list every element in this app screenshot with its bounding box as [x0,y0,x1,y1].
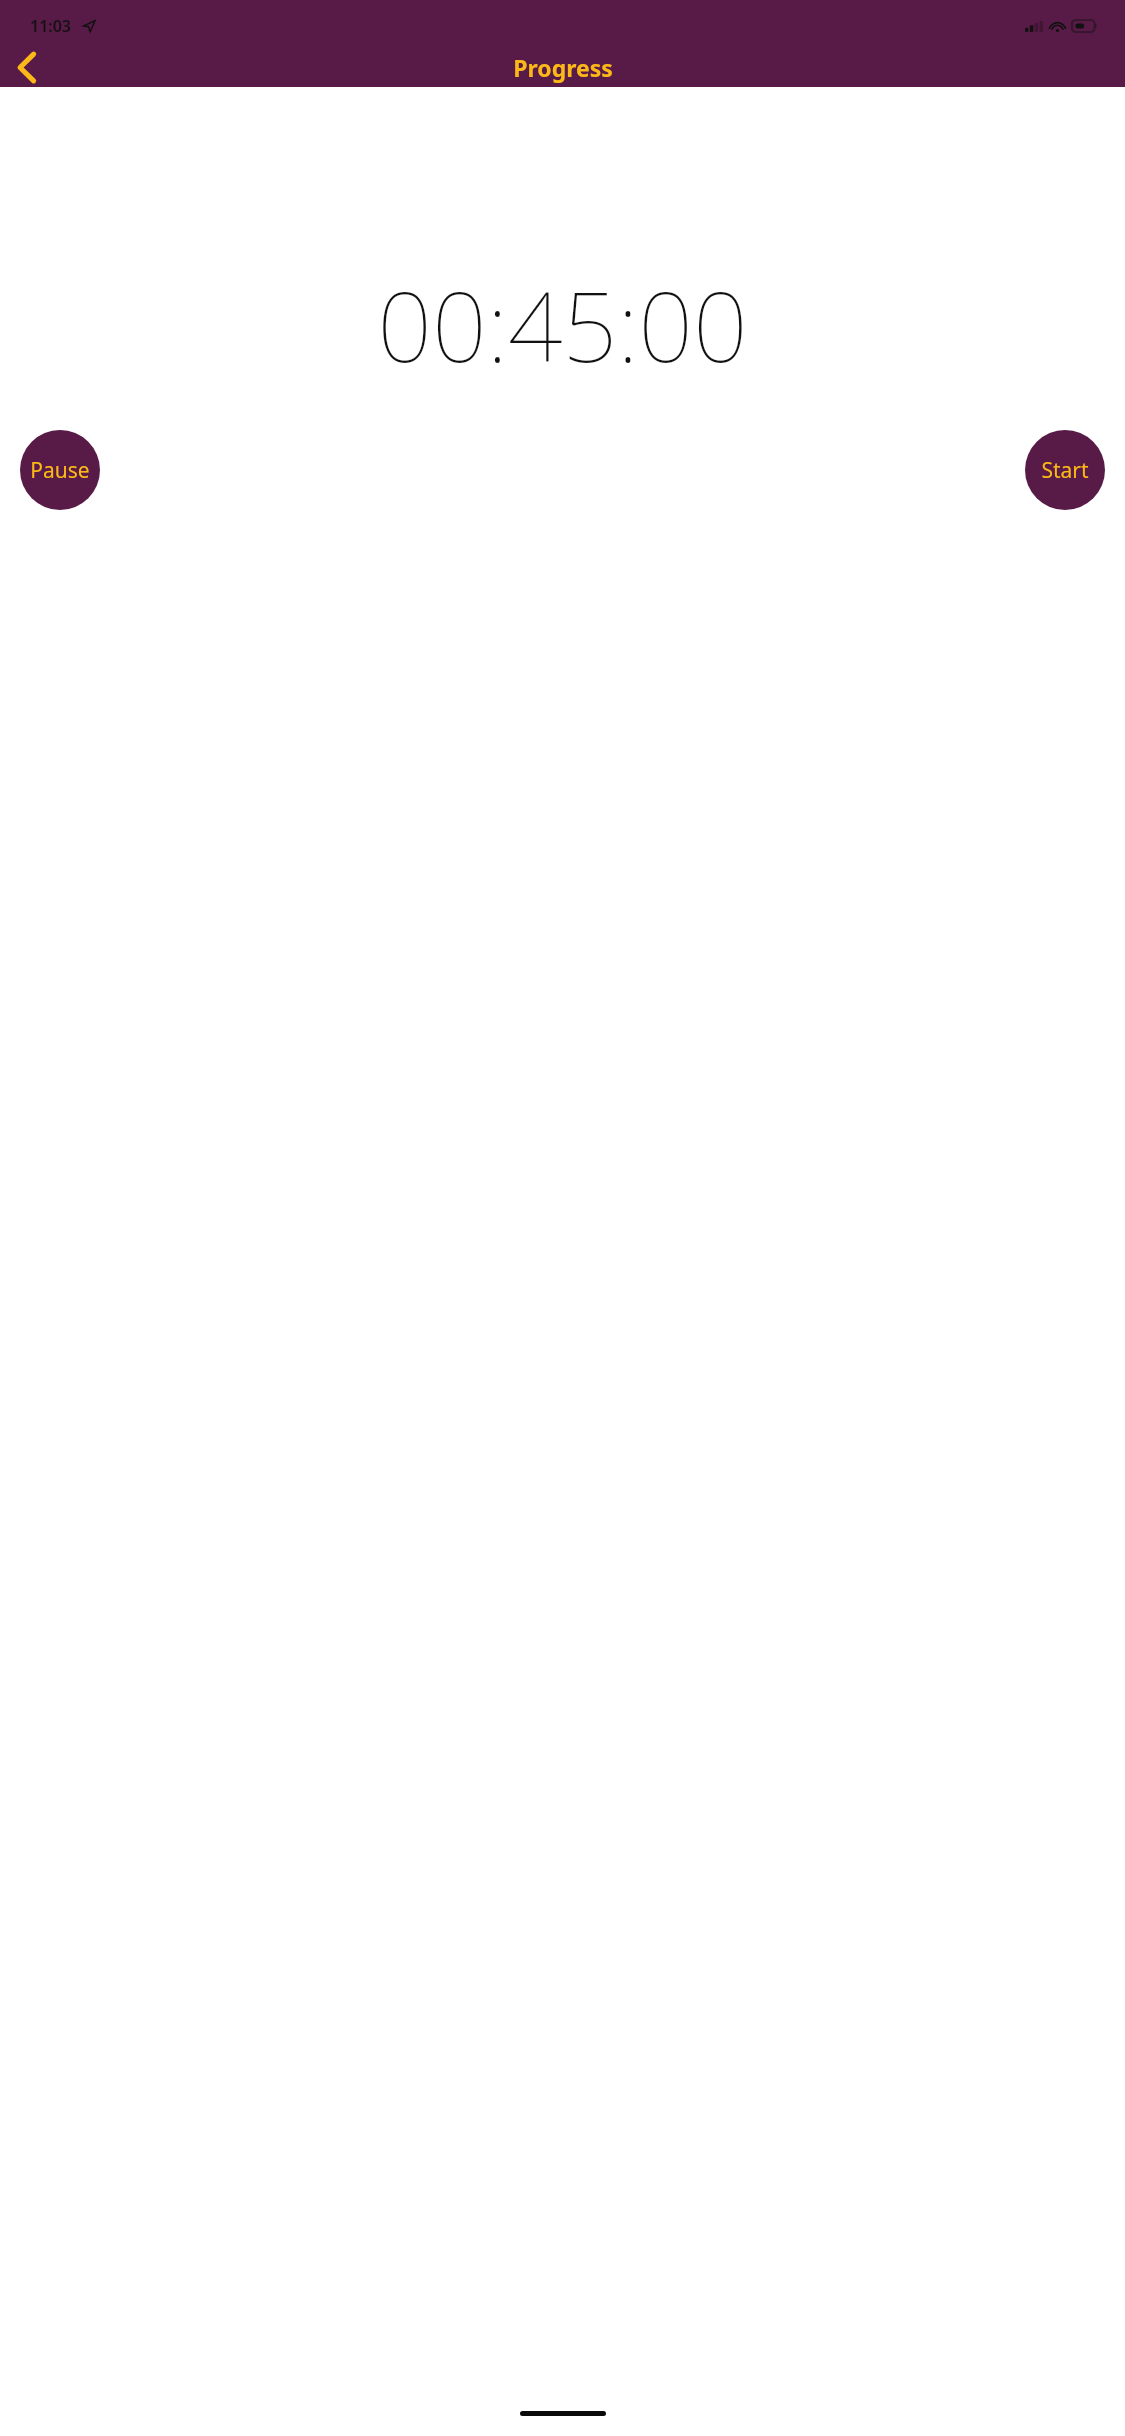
button[interactable]: Back [0,48,52,87]
staticText: 00:45:00 [0,259,1125,390]
button[interactable]: Start [1025,430,1105,510]
staticText: Pause [30,456,90,485]
button[interactable]: Pause [20,430,100,510]
staticText: Start [1041,456,1089,485]
staticText: 11:03 [30,15,72,37]
staticText: Progress [513,52,613,83]
